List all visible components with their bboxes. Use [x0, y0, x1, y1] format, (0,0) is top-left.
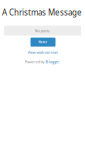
- staticText: No posts.: [34, 28, 50, 33]
- button[interactable]: Home: [29, 38, 55, 47]
- staticText: Powered by: [24, 59, 45, 64]
- button[interactable]: View web version: [27, 50, 57, 55]
- staticText: View web version: [27, 50, 57, 55]
- button[interactable]: Blogger: [45, 59, 59, 64]
- staticText: Home: [38, 40, 47, 44]
- staticText: Blogger: [45, 59, 59, 64]
- staticText: A Christmas Message: [2, 7, 82, 18]
